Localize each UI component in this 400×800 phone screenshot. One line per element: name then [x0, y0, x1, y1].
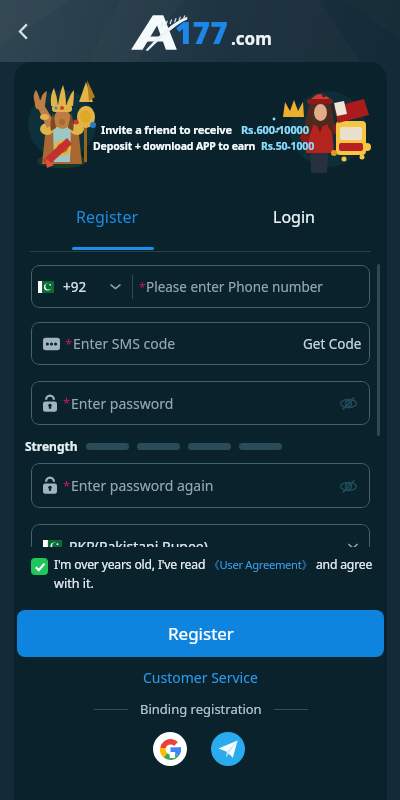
button[interactable]: Sign in with Telegram — [211, 732, 245, 766]
staticText: .com — [231, 27, 272, 50]
staticText: * — [139, 279, 146, 295]
staticText: * — [63, 394, 71, 412]
button[interactable]: * — [31, 322, 370, 365]
staticText: Enter password again — [71, 476, 214, 495]
staticText: Rs.50-1000 — [261, 139, 315, 153]
button[interactable]: Customer Service — [137, 666, 264, 689]
staticText: Deposit + download APP to earn — [93, 139, 256, 153]
staticText: Get Code — [303, 335, 362, 353]
button[interactable]: I'm over years old, I've read — [31, 556, 387, 592]
staticText: 177 — [175, 12, 228, 53]
staticText: Please enter Phone number — [146, 278, 323, 296]
button[interactable]: * — [31, 381, 370, 425]
staticText: Enter password — [71, 394, 174, 413]
staticText: Rs.600-10000 — [241, 122, 309, 137]
staticText: Invite a friend to receive — [101, 122, 232, 137]
staticText: I'm over years old, I've read — [54, 556, 206, 573]
button[interactable]: PKR(Pakistani Rupee) — [31, 524, 370, 547]
staticText: * — [65, 335, 73, 353]
button[interactable]: Show password again — [333, 471, 363, 501]
staticText: Register — [168, 622, 234, 645]
staticText: * — [63, 477, 71, 495]
button[interactable]: Invite a friend to receive — [14, 62, 387, 189]
staticText: PKR(Pakistani Rupee) — [69, 537, 208, 547]
staticText: and agree — [313, 556, 373, 573]
staticText: Binding registration — [140, 700, 262, 718]
button[interactable]: Show password — [333, 388, 363, 418]
staticText: Strength — [25, 438, 78, 454]
button[interactable]: Back — [5, 13, 41, 49]
staticText: +92 — [63, 278, 87, 296]
staticText: Register — [76, 206, 139, 228]
button[interactable]: Sign in with Google — [153, 732, 187, 766]
button[interactable]: Register — [17, 610, 384, 657]
button[interactable]: Login — [200, 193, 387, 241]
staticText: with it. — [54, 575, 94, 592]
button[interactable]: +92 — [31, 265, 370, 308]
button[interactable]: * — [31, 463, 370, 508]
staticText: Customer Service — [143, 668, 258, 687]
button[interactable]: Register — [14, 193, 200, 241]
staticText: Enter SMS code — [73, 334, 176, 353]
button[interactable]: 《User Agreement》 — [206, 557, 313, 572]
button[interactable]: Get Code — [299, 329, 366, 359]
staticText: Login — [273, 206, 315, 228]
